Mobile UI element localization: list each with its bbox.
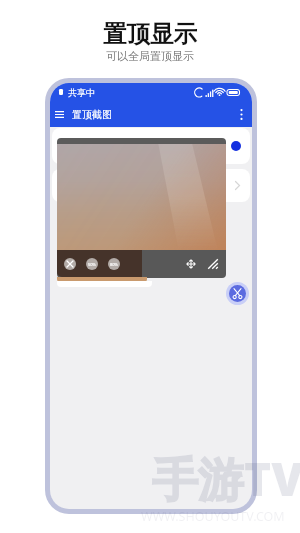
staticText: 共享中 xyxy=(68,87,95,98)
button[interactable]: 80% xyxy=(108,258,120,270)
staticText: 可以全局置顶显示 xyxy=(106,49,194,63)
staticText: 手游TV xyxy=(152,447,300,510)
button[interactable]: Close xyxy=(64,258,76,270)
staticText: WWW.SHOUYOUTV.COM xyxy=(141,508,285,525)
staticText: 50% xyxy=(88,262,96,267)
button[interactable]: Screenshot xyxy=(229,285,246,302)
staticText: 80% xyxy=(110,262,118,267)
button[interactable] xyxy=(52,169,250,202)
button[interactable]: Resize window xyxy=(206,257,220,271)
button[interactable]: 50% xyxy=(86,258,98,270)
button[interactable]: More options xyxy=(234,107,249,122)
button[interactable] xyxy=(52,128,250,164)
staticText: 置顶显示 xyxy=(103,19,197,49)
button[interactable]: Menu xyxy=(52,107,67,122)
staticText: 置顶截图 xyxy=(72,108,112,121)
button[interactable]: Move window xyxy=(184,257,198,271)
